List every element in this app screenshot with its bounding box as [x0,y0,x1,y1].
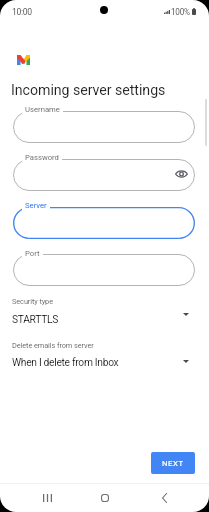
staticText: 100% [171,7,190,17]
button[interactable] [13,111,195,143]
button[interactable]: Show password [171,163,191,185]
button[interactable]: NEXT [151,452,195,474]
button[interactable] [13,159,195,191]
staticText: Password [25,153,59,162]
staticText: Delete emails from server [12,341,94,350]
staticText: Server [25,201,47,210]
staticText: STARTTLS [12,313,58,325]
staticText: Port [25,249,40,258]
button[interactable]: Home [91,484,119,512]
button[interactable] [13,207,195,239]
button[interactable] [13,254,195,286]
button[interactable] [0,337,209,373]
button[interactable]: Recent apps [33,484,61,512]
staticText: Incoming server settings [11,82,166,99]
button[interactable] [0,293,209,329]
staticText: When I delete from Inbox [12,356,119,368]
button[interactable]: Back [150,484,178,512]
staticText: 10:00 [12,7,32,17]
staticText: Username [25,105,60,114]
staticText: NEXT [162,459,184,468]
staticText: Security type [12,297,53,306]
